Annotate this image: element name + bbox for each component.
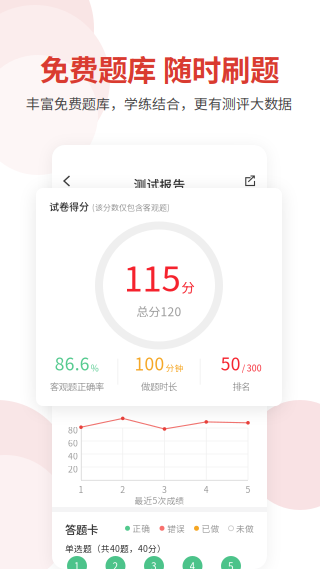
staticText: 分	[181, 277, 194, 296]
staticText: 未做	[236, 522, 254, 534]
staticText: 5	[245, 483, 250, 495]
staticText: 3	[162, 483, 167, 495]
staticText: 50	[221, 350, 241, 375]
staticText: 1	[74, 559, 80, 569]
staticText: 排名	[232, 379, 250, 393]
staticText: 4	[189, 559, 195, 569]
button[interactable]: Back	[55, 168, 78, 194]
staticText: 2	[120, 483, 125, 495]
staticText: 答题卡	[65, 521, 98, 537]
staticText: 测试报告	[133, 175, 185, 193]
staticText: 80	[68, 423, 78, 436]
staticText: 最近5次成绩	[134, 494, 184, 506]
button[interactable]: 1	[67, 556, 87, 569]
staticText: 正确	[132, 522, 150, 534]
staticText: 60	[68, 436, 78, 449]
button[interactable]: 3	[144, 556, 164, 569]
staticText: 3	[151, 559, 157, 569]
staticText: 115	[123, 251, 180, 301]
staticText: 40	[68, 449, 78, 462]
staticText: 单选题（共40题，40分）	[65, 542, 166, 554]
staticText: 试卷得分	[49, 199, 89, 213]
staticText: 86.6	[55, 350, 90, 375]
staticText: 做题时长	[141, 379, 177, 393]
staticText: 错误	[167, 522, 185, 534]
staticText: 20	[68, 462, 78, 475]
staticText: 客观题正确率	[50, 379, 104, 393]
staticText: 100	[134, 350, 164, 375]
button[interactable]: 2	[105, 556, 125, 569]
button[interactable]: 4	[182, 556, 202, 569]
staticText: 丰富免费题库，学练结合，更有测评大数据	[26, 93, 292, 113]
staticText: 5	[228, 559, 234, 569]
staticText: / 300	[242, 361, 262, 374]
staticText: 分钟	[165, 361, 183, 374]
staticText: 免费题库 随时刷题	[40, 47, 279, 89]
staticText: (该分数仅包含客观题)	[92, 201, 170, 213]
staticText: 4	[204, 483, 209, 495]
staticText: %	[91, 361, 99, 374]
staticText: 已做	[201, 522, 219, 534]
staticText: 1	[78, 483, 83, 495]
button[interactable]: 5	[221, 556, 241, 569]
staticText: 2	[112, 559, 118, 569]
staticText: 总分120	[136, 302, 181, 320]
button[interactable]: Share	[236, 168, 263, 193]
